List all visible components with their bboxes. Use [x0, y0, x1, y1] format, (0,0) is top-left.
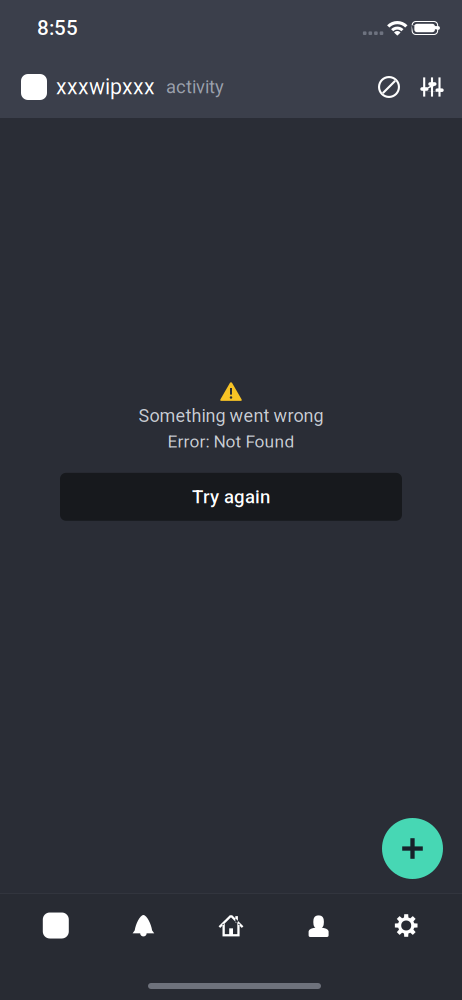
button[interactable]: Settings	[362, 897, 450, 953]
staticText: 8:55	[37, 16, 78, 40]
staticText: Try again	[192, 486, 270, 508]
staticText: xxxwipxxx	[56, 74, 155, 99]
button[interactable]: Activity	[12, 897, 100, 953]
button[interactable]: Notifications	[100, 897, 187, 953]
button[interactable]: Home	[187, 897, 275, 953]
button[interactable]: Filters	[413, 67, 451, 107]
button[interactable]: Mute	[370, 67, 408, 107]
staticText: Something went wrong	[138, 405, 323, 426]
button[interactable]: Create	[382, 818, 443, 879]
staticText: activity	[166, 76, 224, 98]
button[interactable]: Profile	[275, 897, 362, 953]
staticText: Error: Not Found	[167, 431, 294, 452]
button[interactable]: Try again	[60, 473, 402, 521]
